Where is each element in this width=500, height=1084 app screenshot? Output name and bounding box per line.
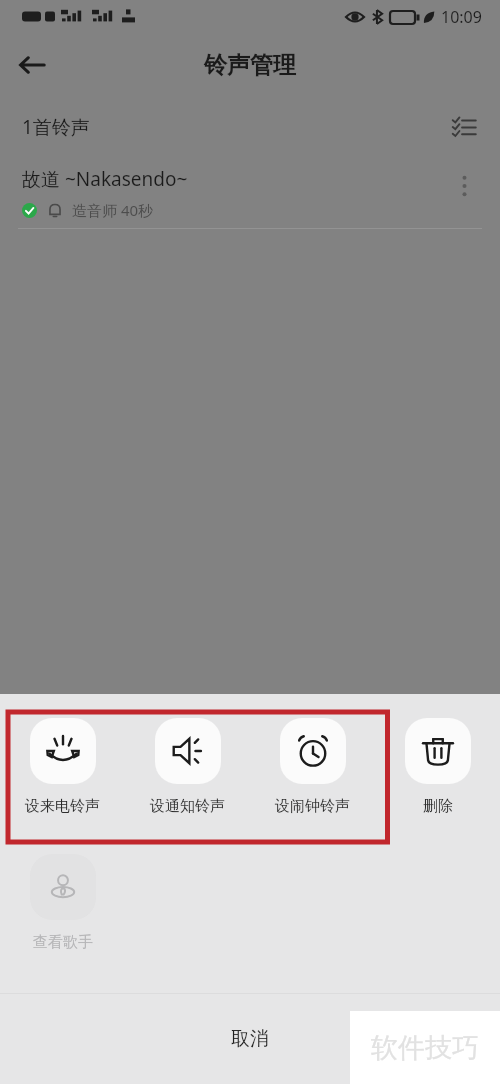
button[interactable]: More options xyxy=(442,164,486,208)
staticText: 10:09 xyxy=(441,6,482,28)
staticText: 故道 ~Nakasendo~ xyxy=(22,166,188,192)
button[interactable]: Back xyxy=(8,41,56,89)
staticText: 取消 xyxy=(231,1027,269,1051)
button[interactable]: 设来电铃声 xyxy=(0,708,125,816)
button[interactable]: 查看歌手 xyxy=(0,854,125,952)
staticText: 铃声管理 xyxy=(204,51,296,80)
button[interactable]: Multi-select xyxy=(442,105,486,149)
staticText: 查看歌手 xyxy=(33,933,93,952)
staticText: 设来电铃声 xyxy=(25,797,100,816)
staticText: 删除 xyxy=(423,797,453,816)
staticText: 软件技巧 xyxy=(371,1031,479,1065)
button[interactable]: 删除 xyxy=(375,708,500,816)
button[interactable]: 设通知铃声 xyxy=(125,708,250,816)
button[interactable]: 取消 xyxy=(0,994,500,1084)
staticText: 1首铃声 xyxy=(22,114,90,140)
staticText: 设通知铃声 xyxy=(150,797,225,816)
button[interactable]: 设闹钟铃声 xyxy=(250,708,375,816)
button[interactable]: 故道 ~Nakasendo~ xyxy=(0,158,500,229)
staticText: 造音师 40秒 xyxy=(72,200,154,220)
staticText: 设闹钟铃声 xyxy=(275,797,350,816)
